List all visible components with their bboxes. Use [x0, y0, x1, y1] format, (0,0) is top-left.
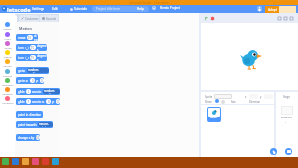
staticText: Sound	[4, 46, 12, 49]
staticText: Edit	[52, 7, 58, 11]
staticText: Adopt	[268, 8, 277, 12]
staticText: Settings	[32, 7, 45, 11]
button[interactable]: App	[2, 158, 9, 165]
button[interactable]: Large stage	[283, 16, 288, 21]
staticText: 1	[28, 100, 30, 104]
button[interactable]: point towards	[16, 121, 53, 128]
button[interactable]: Looks	[0, 32, 15, 41]
staticText: Direction	[249, 100, 261, 104]
staticText: Variables	[2, 92, 13, 95]
button[interactable]: Operators	[0, 78, 15, 87]
button[interactable]: Motion	[0, 22, 15, 31]
button[interactable]: My Blocks	[0, 96, 15, 105]
button[interactable]: Choose a Backdrop	[285, 148, 292, 155]
staticText: Operators	[2, 83, 14, 86]
staticText: turn	[18, 56, 24, 60]
staticText: Looks	[4, 37, 11, 40]
button[interactable]: Sensing	[0, 69, 15, 78]
staticText: 0	[41, 79, 43, 83]
button[interactable]: App	[52, 158, 59, 165]
staticText: y	[260, 95, 262, 99]
button[interactable]: Help	[137, 7, 144, 11]
button[interactable]: App	[42, 158, 49, 165]
staticText: 1	[28, 90, 30, 94]
button[interactable]: Choose a Sprite	[270, 148, 277, 155]
staticText: 1	[285, 120, 287, 123]
button[interactable]: Variables	[0, 87, 15, 96]
staticText: Letscode Studio - Chromium	[129, 1, 169, 5]
button[interactable]: Project title here	[92, 6, 149, 12]
staticText: Size	[231, 100, 236, 104]
staticText: random position	[44, 89, 60, 94]
button[interactable]: point in direction	[16, 111, 43, 118]
staticText: glide	[18, 90, 25, 94]
staticText: mouse-pointer	[39, 122, 53, 127]
staticText: go to x:	[18, 79, 29, 83]
button[interactable]: Sound	[0, 41, 15, 50]
staticText: Stage	[283, 95, 290, 99]
button[interactable]: turn	[16, 44, 47, 51]
staticText: random position	[28, 68, 49, 73]
staticText: 0	[48, 100, 50, 104]
button[interactable]: Sounds	[40, 15, 58, 22]
staticText: point in direction	[18, 113, 42, 117]
staticText: Sprite	[205, 95, 213, 99]
button[interactable]: go to	[16, 67, 49, 74]
button[interactable]: Remix Project	[152, 6, 180, 10]
button[interactable]: Events	[0, 50, 15, 59]
button[interactable]: App	[12, 158, 19, 165]
button[interactable]: glide	[16, 98, 60, 105]
staticText: Help	[137, 7, 144, 11]
staticText: steps	[34, 34, 38, 41]
button[interactable]: turn	[16, 54, 47, 61]
button[interactable]: Go	[204, 16, 209, 21]
staticText: 10	[28, 36, 32, 40]
staticText: Sprite1	[210, 116, 218, 119]
staticText: 15	[31, 56, 35, 60]
staticText: Sensing	[3, 74, 12, 77]
staticText: Motion	[3, 27, 12, 30]
button[interactable]: Settings	[32, 7, 45, 11]
staticText: go to	[18, 69, 26, 73]
staticText: y:	[52, 100, 55, 104]
button[interactable]: move	[16, 34, 38, 41]
staticText: Backdrops	[281, 116, 292, 119]
button[interactable]: Tutorials	[70, 7, 87, 11]
button[interactable]: go to x:	[16, 77, 44, 84]
button[interactable]: App	[32, 158, 39, 165]
staticText: Remix Project	[160, 6, 180, 10]
staticText: Project title here	[96, 7, 120, 11]
button[interactable]: Small stage	[277, 16, 282, 21]
staticText: secs to x:	[32, 100, 45, 104]
staticText: point towards	[18, 123, 37, 127]
staticText: glide	[18, 100, 25, 104]
button[interactable]: App	[22, 158, 29, 165]
button[interactable]: Adopt	[265, 6, 279, 13]
button[interactable]: change x by	[16, 134, 40, 141]
staticText: change x by	[18, 136, 35, 140]
button[interactable]: Full screen	[289, 16, 294, 21]
staticText: Events	[4, 55, 12, 58]
staticText: Control	[3, 64, 12, 67]
staticText: Tutorials	[74, 7, 87, 11]
staticText: My Blocks	[2, 101, 14, 104]
staticText: secs to	[32, 90, 42, 94]
button[interactable]: glide	[16, 88, 60, 95]
staticText: turn	[18, 46, 24, 50]
button[interactable]: Sprite1	[207, 107, 221, 122]
staticText: 10	[36, 136, 40, 140]
staticText: 0	[32, 79, 34, 83]
button[interactable]: Account	[257, 6, 262, 11]
staticText: degrees	[37, 44, 47, 51]
button[interactable]: Costumes	[19, 15, 39, 22]
button[interactable]: Edit	[52, 7, 58, 11]
staticText: Costumes	[25, 17, 39, 21]
button[interactable]: Stop	[210, 16, 215, 21]
staticText: Show	[205, 100, 212, 104]
staticText: Motion	[19, 26, 32, 31]
staticText: 0	[57, 100, 59, 104]
button[interactable]: Control	[0, 59, 15, 68]
staticText: letscode	[7, 6, 31, 14]
